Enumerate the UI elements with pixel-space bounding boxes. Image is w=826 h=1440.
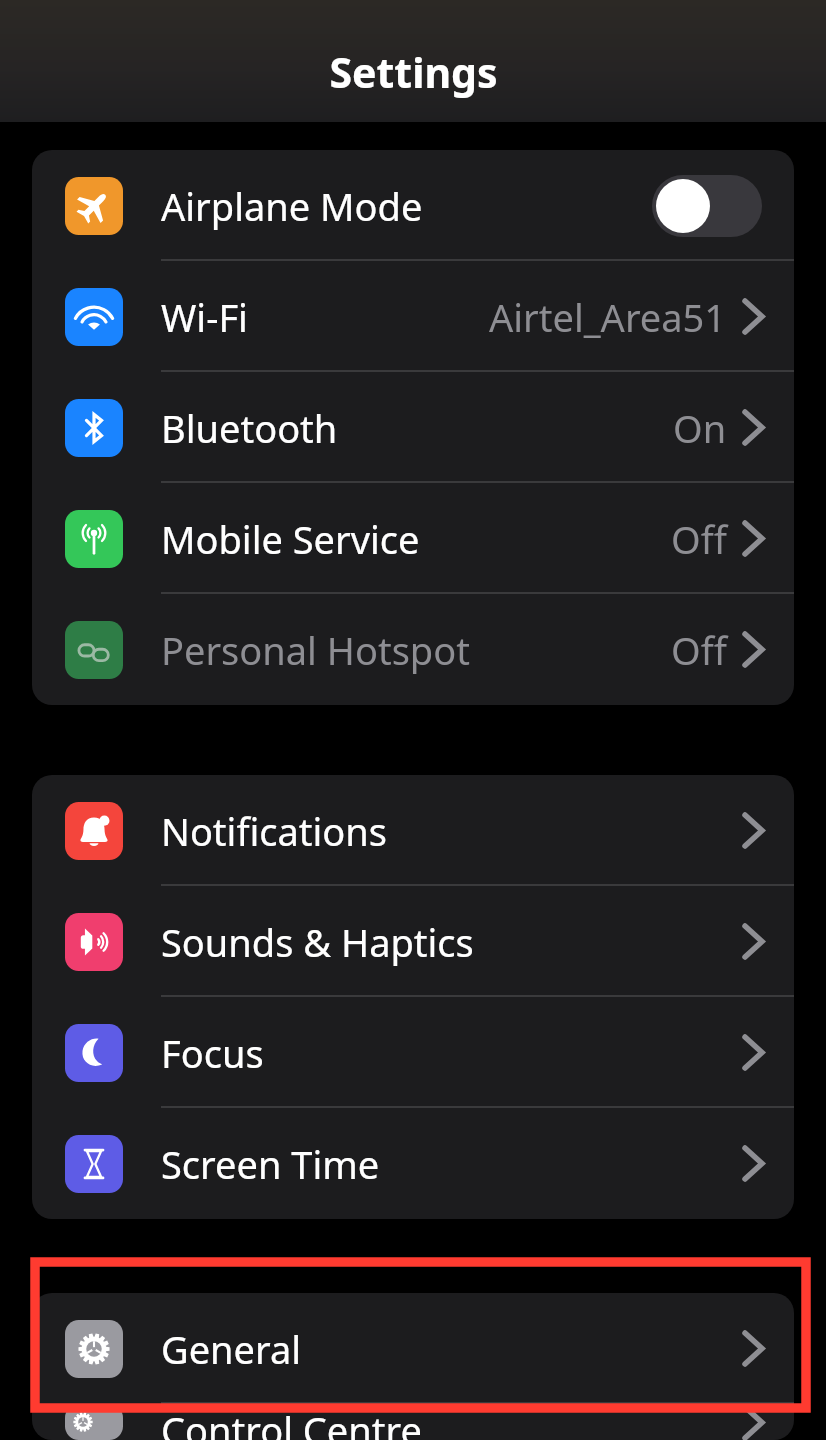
button[interactable]: Notifications — [32, 775, 794, 886]
staticText: Personal Hotspot — [161, 624, 470, 676]
staticText: On — [673, 402, 727, 454]
button[interactable]: Wi-Fi — [32, 261, 794, 372]
staticText: Airtel_Area51 — [489, 291, 727, 343]
staticText: Airplane Mode — [161, 180, 423, 232]
button[interactable]: Screen Time — [32, 1108, 794, 1219]
staticText: Screen Time — [161, 1138, 380, 1190]
button[interactable]: Control Centre — [32, 1404, 794, 1440]
button[interactable]: General — [32, 1293, 794, 1404]
button[interactable]: Personal Hotspot — [32, 594, 794, 705]
staticText: Focus — [161, 1027, 264, 1079]
staticText: Control Centre — [161, 1404, 422, 1440]
button[interactable]: Mobile Service — [32, 483, 794, 594]
staticText: Settings — [329, 44, 498, 100]
button[interactable]: Focus — [32, 997, 794, 1108]
staticText: Wi-Fi — [161, 291, 248, 343]
staticText: Bluetooth — [161, 402, 338, 454]
staticText: Mobile Service — [161, 513, 420, 565]
staticText: General — [161, 1323, 302, 1375]
button[interactable]: Bluetooth — [32, 372, 794, 483]
staticText: Notifications — [161, 805, 388, 857]
staticText: Sounds & Haptics — [161, 916, 474, 968]
button[interactable]: Airplane Mode — [32, 150, 794, 261]
staticText: Off — [671, 624, 727, 676]
button[interactable]: Sounds & Haptics — [32, 886, 794, 997]
staticText: Off — [671, 513, 727, 565]
button[interactable]: Airplane Mode toggle — [652, 175, 762, 237]
